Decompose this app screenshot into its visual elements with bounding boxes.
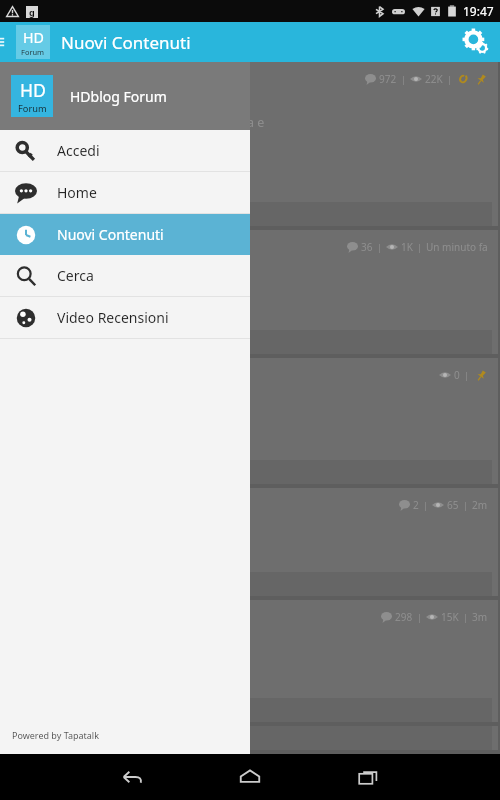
staticText: 298: [395, 610, 413, 624]
staticText: |: [377, 241, 382, 253]
staticText: |: [447, 73, 452, 85]
staticText: Un minuto fa: [426, 240, 488, 254]
button[interactable]: Settings: [452, 22, 500, 62]
staticText: 36: [361, 240, 373, 254]
staticText: 972: [379, 72, 397, 86]
staticText: |: [464, 369, 469, 381]
staticText: Powered by Tapatalk: [12, 729, 99, 741]
staticText: Nuovi Contenuti: [57, 225, 164, 244]
staticText: 15K: [441, 610, 459, 624]
button[interactable]: HD: [0, 62, 250, 130]
button[interactable]: Back: [109, 754, 155, 800]
button[interactable]: 298: [0, 600, 500, 726]
staticText: Accedi: [57, 141, 100, 160]
staticText: agari con il flash di notte...ci mette u…: [2, 114, 265, 131]
button[interactable]: Home: [227, 754, 273, 800]
button[interactable]: Cerca: [0, 255, 250, 296]
staticText: Video Recensioni: [57, 308, 169, 327]
staticText: Nuovi Contenuti: [61, 31, 191, 54]
staticText: |: [463, 611, 468, 623]
staticText: |: [423, 499, 428, 511]
button[interactable]: Open navigation drawer: [0, 22, 16, 62]
staticText: 19:47: [463, 3, 494, 19]
button[interactable]: 36: [0, 230, 500, 358]
staticText: Forum: [18, 102, 47, 115]
staticText: |: [417, 611, 422, 623]
button[interactable]: 123: [0, 726, 500, 754]
staticText: Forum: [21, 47, 45, 57]
button[interactable]: Accedi: [0, 130, 250, 171]
staticText: |: [463, 499, 468, 511]
button[interactable]: 972: [0, 62, 500, 230]
staticText: HDblog Forum: [70, 87, 167, 106]
staticText: g: [29, 6, 35, 18]
staticText: 2m: [472, 498, 488, 512]
button[interactable]: Video Recensioni: [0, 297, 250, 338]
staticText: 65: [447, 498, 459, 512]
button[interactable]: Nuovi Contenuti: [0, 214, 250, 255]
button[interactable]: Recent apps: [345, 754, 391, 800]
staticText: 0: [454, 368, 460, 382]
staticText: HD: [20, 78, 46, 102]
staticText: 3m: [472, 610, 488, 624]
staticText: HD: [23, 28, 44, 47]
staticText: Home: [57, 183, 97, 202]
button[interactable]: 0: [0, 358, 500, 488]
staticText: li per televisori Viera 3D: [2, 274, 156, 292]
staticText: 2: [413, 498, 419, 512]
button[interactable]: 2: [0, 488, 500, 600]
staticText: |: [401, 73, 406, 85]
button[interactable]: Home: [0, 172, 250, 213]
staticText: 1K: [401, 240, 413, 254]
staticText: Cerca: [57, 266, 94, 285]
staticText: 22K: [425, 72, 443, 86]
staticText: |: [417, 241, 422, 253]
staticText: cata..il meizu come si comporta?: [2, 131, 193, 148]
